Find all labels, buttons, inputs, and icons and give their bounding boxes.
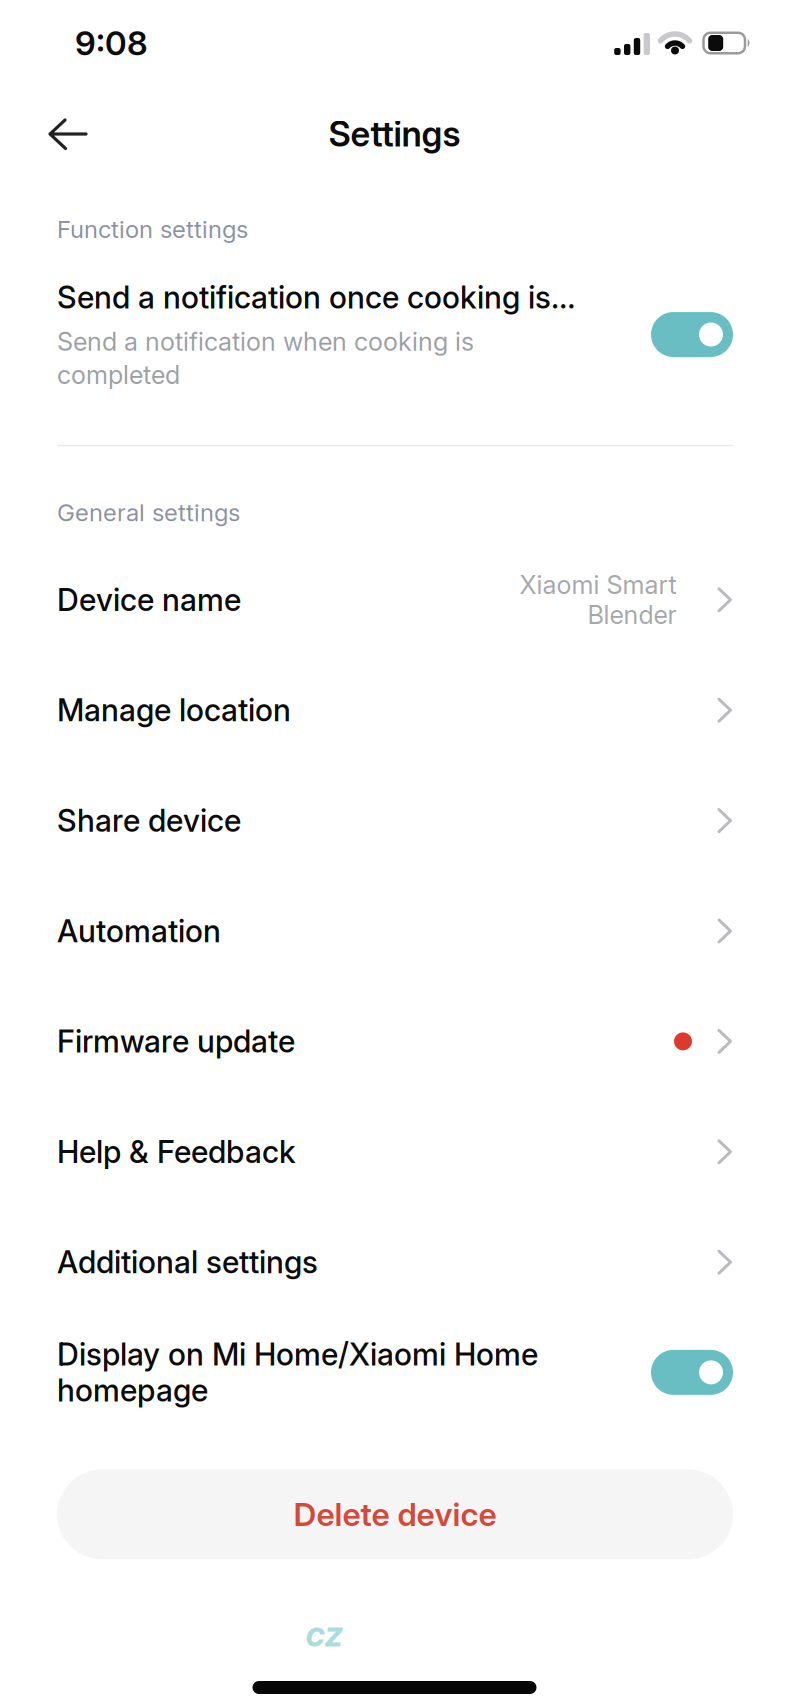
- staticText: Automation: [57, 913, 221, 949]
- staticText: Send a notification when cooking is comp…: [57, 326, 474, 390]
- staticText: Settings: [328, 114, 460, 154]
- staticText: 9:08: [75, 23, 148, 63]
- staticText: Display on Mi Home/Xiaomi Home homepage: [57, 1336, 538, 1409]
- staticText: Device name: [57, 582, 241, 618]
- button[interactable]: Automation: [0, 876, 789, 986]
- staticText: Help & Feedback: [57, 1134, 296, 1170]
- button[interactable]: Send a notification once cooking is comp…: [651, 312, 733, 357]
- staticText: General settings: [57, 498, 240, 527]
- button[interactable]: Help & Feedback: [0, 1097, 789, 1207]
- staticText: cz: [305, 1613, 343, 1654]
- button[interactable]: Back: [0, 98, 108, 169]
- staticText: Xiaomi Smart Blender: [519, 570, 676, 630]
- button[interactable]: Additional settings: [0, 1207, 789, 1317]
- staticText: Additional settings: [57, 1244, 318, 1280]
- button[interactable]: Delete device: [57, 1469, 733, 1559]
- button[interactable]: Device name: [0, 545, 789, 655]
- staticText: Delete device: [293, 1495, 496, 1533]
- button[interactable]: Display on Mi Home/Xiaomi Home homepage: [651, 1350, 733, 1395]
- staticText: Function settings: [57, 215, 248, 243]
- staticText: Send a notification once cooking is…: [57, 279, 575, 315]
- staticText: Firmware update: [57, 1023, 295, 1059]
- staticText: Manage location: [57, 692, 291, 728]
- staticText: Share device: [57, 802, 241, 839]
- button[interactable]: Firmware update: [0, 986, 789, 1097]
- button[interactable]: Share device: [0, 765, 789, 876]
- button[interactable]: Manage location: [0, 655, 789, 765]
